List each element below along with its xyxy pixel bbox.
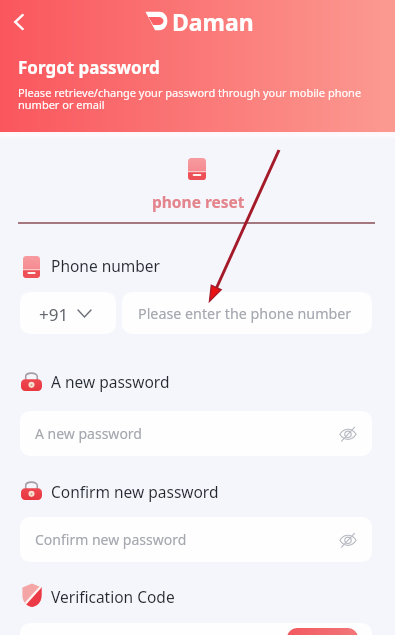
- staticText: A new password: [51, 371, 170, 392]
- button[interactable]: Toggle password visibility: [336, 528, 360, 552]
- staticText: Please enter the phone number: [138, 304, 352, 323]
- staticText: Confirm new password: [35, 530, 187, 549]
- staticText: Confirm new password: [51, 481, 219, 502]
- staticText: A new password: [35, 424, 142, 443]
- staticText: Please retrieve/change your password thr…: [18, 85, 374, 112]
- button[interactable]: Confirm new password: [20, 517, 372, 562]
- button[interactable]: +91: [20, 292, 116, 334]
- staticText: +91: [39, 303, 69, 326]
- button[interactable]: Send: [287, 628, 358, 635]
- button[interactable]: Send: [20, 623, 372, 635]
- button[interactable]: Back: [3, 6, 35, 38]
- button[interactable]: Please enter the phone number: [122, 292, 372, 334]
- staticText: Forgot password: [18, 56, 160, 79]
- staticText: Phone number: [51, 255, 161, 276]
- button[interactable]: A new password: [20, 411, 372, 456]
- button[interactable]: Toggle password visibility: [336, 422, 360, 446]
- staticText: Daman: [172, 6, 254, 37]
- staticText: Verification Code: [51, 586, 175, 607]
- staticText: phone reset: [152, 191, 245, 212]
